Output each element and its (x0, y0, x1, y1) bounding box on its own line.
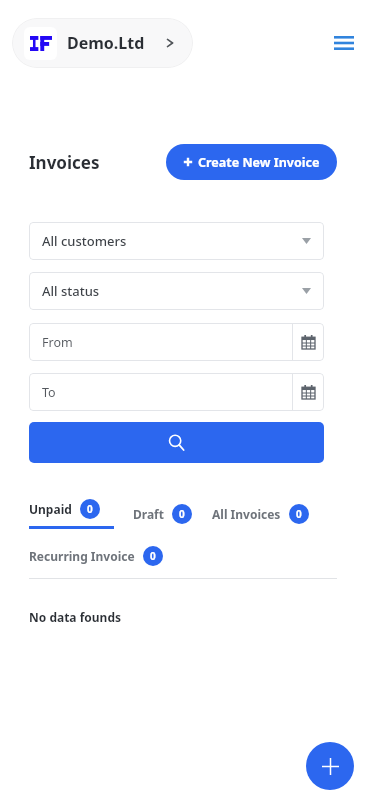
staticText: All Invoices (212, 506, 281, 522)
staticText: No data founds (29, 609, 122, 625)
staticText: Create New Invoice (198, 154, 320, 171)
staticText: To (42, 384, 56, 401)
button[interactable]: Demo.Ltd (12, 18, 193, 68)
button[interactable]: Pick date (293, 373, 324, 411)
staticText: Recurring Invoice (29, 548, 135, 564)
button[interactable]: From (29, 323, 324, 361)
button[interactable]: All Invoices (212, 504, 309, 524)
button[interactable]: Unpaid (29, 499, 100, 519)
staticText: From (42, 334, 73, 351)
staticText: All customers (42, 232, 127, 250)
staticText: Invoices (29, 151, 100, 174)
button[interactable]: All customers (29, 222, 324, 260)
staticText: 0 (150, 549, 156, 563)
staticText: 0 (87, 502, 93, 516)
button[interactable]: Recurring Invoice (29, 546, 163, 566)
staticText: Demo.Ltd (67, 32, 145, 54)
staticText: 0 (179, 507, 185, 521)
staticText: All status (42, 282, 100, 300)
button[interactable]: To (29, 373, 324, 411)
button[interactable]: Pick date (293, 323, 324, 361)
staticText: Draft (133, 506, 164, 522)
button[interactable]: All status (29, 272, 324, 310)
staticText: 0 (296, 507, 302, 521)
staticText: Unpaid (29, 501, 72, 517)
button[interactable]: Search (29, 422, 324, 463)
button[interactable]: Add invoice (306, 742, 354, 790)
button[interactable]: Draft (133, 504, 192, 524)
button[interactable]: Menu (331, 30, 357, 56)
button[interactable]: Create New Invoice (166, 144, 337, 180)
